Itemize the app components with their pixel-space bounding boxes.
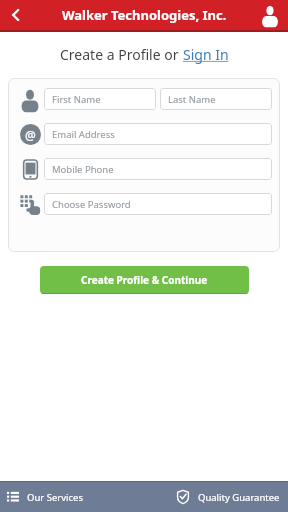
button[interactable]: Our Services bbox=[0, 482, 83, 512]
button[interactable]: Email Address bbox=[44, 123, 272, 145]
button[interactable]: Mobile Phone bbox=[44, 158, 272, 180]
staticText: Email Address bbox=[52, 128, 115, 141]
button[interactable]: Create a Profile or bbox=[60, 45, 229, 64]
button[interactable] bbox=[0, 0, 32, 30]
button[interactable]: Last Name bbox=[160, 88, 272, 110]
staticText: Our Services bbox=[27, 491, 83, 504]
staticText: First Name bbox=[52, 93, 101, 106]
staticText: Create a Profile or bbox=[60, 45, 183, 64]
staticText: Last Name bbox=[168, 93, 216, 106]
staticText: Choose Password bbox=[52, 198, 131, 211]
staticText: Walker Technologies, Inc. bbox=[62, 6, 227, 24]
staticText: Create Profile & Continue bbox=[81, 273, 208, 287]
button[interactable] bbox=[252, 1, 288, 31]
staticText: Quality Guarantee bbox=[198, 491, 280, 504]
staticText: Mobile Phone bbox=[52, 163, 114, 176]
button[interactable]: First Name bbox=[44, 88, 156, 110]
button[interactable]: Choose Password bbox=[44, 193, 272, 215]
button[interactable]: Create Profile & Continue bbox=[40, 266, 249, 294]
staticText: @ bbox=[25, 127, 36, 143]
staticText: Sign In bbox=[183, 45, 229, 64]
button[interactable]: Quality Guarantee bbox=[177, 482, 288, 512]
